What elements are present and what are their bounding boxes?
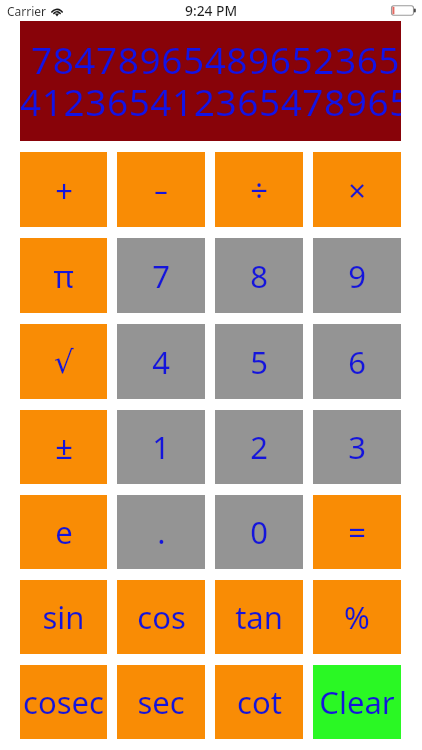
staticText: 3 xyxy=(348,426,366,468)
button[interactable]: % xyxy=(313,580,401,654)
staticText: 9 xyxy=(348,255,366,297)
staticText: sec xyxy=(137,681,185,723)
button[interactable]: π xyxy=(20,238,107,313)
staticText: – xyxy=(154,171,168,208)
staticText: 7 xyxy=(152,255,170,297)
staticText: 8 xyxy=(250,255,268,297)
button[interactable]: cot xyxy=(215,665,303,739)
staticText: Clear xyxy=(319,681,395,723)
staticText: = xyxy=(348,511,366,553)
button[interactable]: tan xyxy=(215,580,303,654)
staticText: cos xyxy=(137,596,186,638)
staticText: 1 xyxy=(152,426,170,468)
button[interactable]: – xyxy=(117,152,205,227)
button[interactable]: 5 xyxy=(215,324,303,399)
button[interactable]: × xyxy=(313,152,401,227)
staticText: cosec xyxy=(23,681,104,723)
staticText: × xyxy=(348,169,366,211)
staticText: 2 xyxy=(250,426,268,468)
staticText: 5 xyxy=(250,341,268,383)
staticText: ÷ xyxy=(250,169,268,211)
staticText: % xyxy=(344,596,370,638)
staticText: sin xyxy=(42,596,85,638)
staticText: Carrier xyxy=(7,3,47,19)
button[interactable]: 8 xyxy=(215,238,303,313)
staticText: . xyxy=(157,511,166,553)
staticText: cot xyxy=(237,681,282,723)
staticText: 6 xyxy=(348,341,366,383)
staticText: 0 xyxy=(250,511,268,553)
other: Battery xyxy=(391,5,416,16)
button[interactable]: 1 xyxy=(117,410,205,484)
staticText: tan xyxy=(235,596,283,638)
staticText: 9:24 PM xyxy=(185,1,238,20)
button[interactable]: = xyxy=(313,495,401,569)
button[interactable]: sin xyxy=(20,580,107,654)
button[interactable]: √ xyxy=(20,324,107,399)
button[interactable]: ÷ xyxy=(215,152,303,227)
button[interactable]: + xyxy=(20,152,107,227)
button[interactable]: e xyxy=(20,495,107,569)
button[interactable]: sec xyxy=(117,665,205,739)
button[interactable]: cosec xyxy=(20,665,107,739)
button[interactable]: Display xyxy=(20,21,401,141)
button[interactable]: 6 xyxy=(313,324,401,399)
button[interactable]: 9 xyxy=(313,238,401,313)
button[interactable]: ± xyxy=(20,410,107,484)
staticText: ± xyxy=(55,426,73,468)
button[interactable]: 2 xyxy=(215,410,303,484)
staticText: 78478965489652365 412365412365478965 xyxy=(20,34,401,127)
staticText: √ xyxy=(54,344,74,380)
button[interactable]: cos xyxy=(117,580,205,654)
staticText: π xyxy=(53,255,74,297)
button[interactable]: 7 xyxy=(117,238,205,313)
button[interactable]: 0 xyxy=(215,495,303,569)
staticText: + xyxy=(55,169,73,211)
button[interactable]: 3 xyxy=(313,410,401,484)
button[interactable]: Clear xyxy=(313,665,401,739)
other: Wi-Fi xyxy=(50,5,64,16)
button[interactable]: 4 xyxy=(117,324,205,399)
staticText: 4 xyxy=(152,341,170,383)
button[interactable]: . xyxy=(117,495,205,569)
staticText: e xyxy=(55,511,73,553)
